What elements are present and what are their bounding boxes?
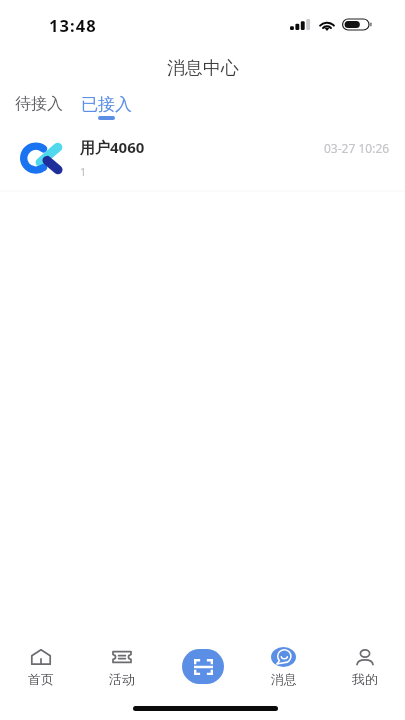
staticText: 13:48 [49, 14, 97, 36]
staticText: 已接入 [81, 94, 132, 115]
staticText: 活动 [109, 671, 135, 687]
button[interactable]: 我的 [324, 649, 405, 701]
staticText: 首页 [28, 671, 54, 687]
staticText: 1 [80, 164, 87, 179]
button[interactable]: 已接入 [81, 88, 132, 120]
button[interactable]: 用户4060 [0, 128, 405, 188]
button[interactable]: 首页 [0, 649, 81, 701]
button[interactable]: 扫一扫 [182, 649, 224, 684]
staticText: 待接入 [15, 94, 63, 114]
button[interactable]: 待接入 [15, 88, 63, 119]
button[interactable]: 活动 [81, 649, 162, 701]
staticText: 用户4060 [80, 137, 145, 157]
button[interactable]: 消息 [243, 649, 324, 701]
staticText: 我的 [352, 671, 378, 687]
staticText: 03-27 10:26 [324, 140, 390, 156]
staticText: 消息 [271, 671, 297, 687]
staticText: 消息中心 [167, 57, 239, 80]
